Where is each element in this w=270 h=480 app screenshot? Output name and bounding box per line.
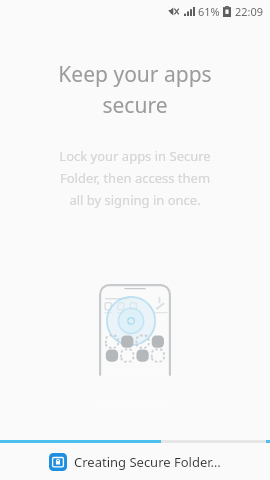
button[interactable]: Secure Folder — [0, 443, 270, 480]
staticText: Lock your apps in Secure Folder, then ac… — [24, 147, 246, 209]
staticText: Creating Secure Folder… — [74, 453, 221, 471]
staticText: 61% — [198, 4, 220, 19]
staticText: Keep your apps secure — [24, 60, 246, 119]
other: Secure Folder — [49, 453, 67, 471]
staticText: 22:09 — [235, 4, 264, 19]
